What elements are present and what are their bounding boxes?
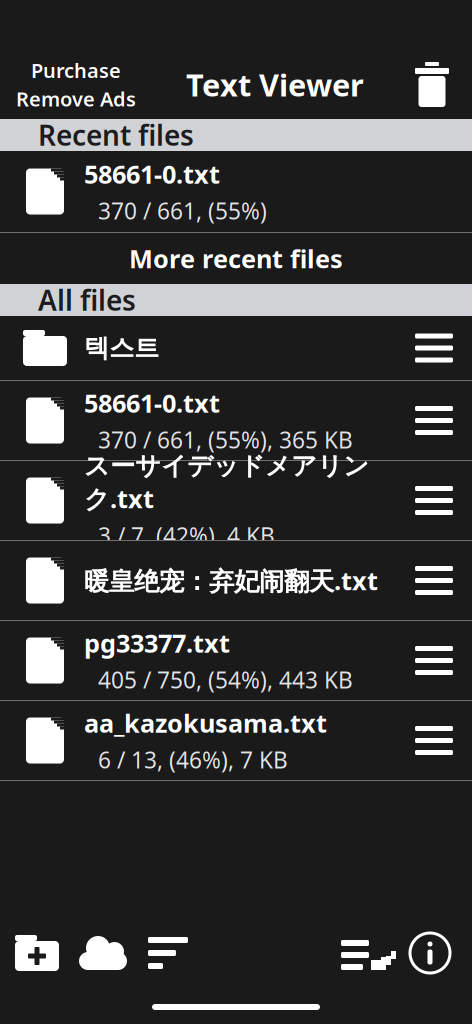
button[interactable]: Purchase <box>6 51 146 118</box>
staticText: 370 / 661, (55%), 365 KB <box>98 425 353 455</box>
staticText: More recent files <box>129 242 343 275</box>
button[interactable]: 暖皇绝宠：弃妃闹翻天.txt <box>0 541 472 620</box>
staticText: pg33377.txt <box>84 626 230 660</box>
staticText: スーサイデッドメアリンク.txt <box>84 451 369 515</box>
button[interactable]: Info <box>402 927 458 979</box>
button[interactable]: Delete <box>404 57 460 111</box>
button[interactable]: Sort <box>136 927 202 979</box>
button[interactable]: Select files <box>336 927 402 979</box>
staticText: 6 / 13, (46%), 7 KB <box>98 745 288 775</box>
staticText: Text Viewer <box>186 64 364 105</box>
staticText: Purchase <box>31 57 121 83</box>
staticText: 3 / 7, (42%), 4 KB <box>98 520 275 550</box>
staticText: Remove Ads <box>16 85 136 112</box>
button[interactable]: スーサイデッドメアリンク.txt <box>0 461 472 540</box>
button[interactable]: New folder <box>4 927 70 979</box>
staticText: All files <box>38 281 136 319</box>
staticText: 370 / 661, (55%) <box>98 196 267 226</box>
button[interactable]: Cloud storage <box>70 927 136 979</box>
staticText: 405 / 750, (54%), 443 KB <box>98 665 353 695</box>
staticText: 58661-0.txt <box>84 157 220 191</box>
staticText: Recent files <box>38 116 194 154</box>
button[interactable]: pg33377.txt <box>0 621 472 700</box>
button[interactable]: 58661-0.txt <box>0 381 472 460</box>
staticText: 58661-0.txt <box>84 386 220 420</box>
staticText: aa_kazokusama.txt <box>84 706 327 740</box>
button[interactable]: 58661-0.txt <box>0 151 472 232</box>
button[interactable]: More recent files <box>0 233 472 284</box>
button[interactable]: 텍스트 <box>0 316 472 380</box>
staticText: 텍스트 <box>84 332 159 363</box>
button[interactable]: aa_kazokusama.txt <box>0 701 472 780</box>
staticText: 暖皇绝宠：弃妃闹翻天.txt <box>84 564 378 597</box>
